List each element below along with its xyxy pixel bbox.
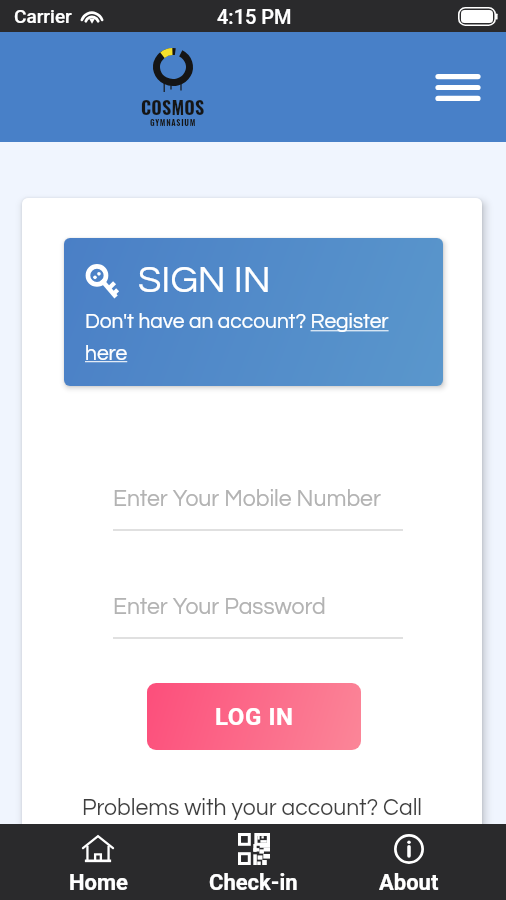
button[interactable]: Home bbox=[20, 824, 176, 900]
button[interactable]: About bbox=[331, 824, 486, 900]
staticText: 4:15 PM bbox=[217, 5, 292, 28]
staticText: About bbox=[379, 870, 439, 896]
button[interactable]: Don't have an account? Register here bbox=[85, 311, 418, 364]
button[interactable]: Menu bbox=[432, 61, 484, 113]
staticText: SIGN IN bbox=[138, 261, 271, 300]
button[interactable]: Check-in bbox=[176, 824, 331, 900]
staticText: Home bbox=[69, 870, 128, 896]
staticText: Carrier bbox=[14, 5, 72, 27]
staticText: Enter Your Mobile Number bbox=[113, 487, 381, 511]
staticText: Enter Your Password bbox=[113, 595, 326, 619]
staticText: Check-in bbox=[209, 870, 298, 896]
button[interactable]: LOG IN bbox=[147, 683, 361, 750]
staticText: GYMNASIUM bbox=[150, 116, 197, 128]
staticText: COSMOS bbox=[141, 94, 205, 121]
staticText: LOG IN bbox=[215, 703, 294, 731]
staticText: Problems with your account? Call bbox=[82, 796, 423, 820]
